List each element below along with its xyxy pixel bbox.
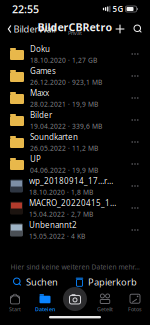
staticText: Dateien [35, 306, 55, 313]
staticText: 15.05.2022 · 4 KB [29, 232, 85, 240]
button[interactable]: Suchen [129, 20, 147, 38]
button[interactable]: Soundkarten [0, 131, 150, 153]
button[interactable]: Unbenannt2 [0, 219, 150, 241]
staticText: 26.05.2022 · 11,2 MB [30, 144, 98, 152]
staticText: MACRO_20220415_125125 [29, 197, 116, 208]
staticText: Bilder [30, 109, 52, 120]
button[interactable]: Games [0, 65, 150, 87]
staticText: 28.02.2021 · 19,9 MB [30, 100, 98, 108]
staticText: 15.04.2022 · 2,7 MB [29, 210, 93, 218]
staticText: Suchen [26, 276, 58, 288]
staticText: Games [30, 65, 56, 76]
button[interactable]: Hinzufügen [111, 20, 129, 38]
staticText: Hier sind keine weiteren Dateien mehr… [10, 263, 139, 271]
staticText: 04.06.2022 · 19,9 MB [30, 166, 98, 174]
button[interactable]: Bilder [0, 109, 150, 131]
button[interactable]: wp_20180914_17…rc-1-1-jpg.914888 [0, 175, 150, 197]
staticText: Maxx [30, 87, 49, 98]
staticText: Geteilt [97, 306, 113, 313]
staticText: wp_20180914_17…rc-1-1-jpg.914888 [29, 175, 116, 186]
staticText: 19.04.2022 · 339,6 MB [30, 122, 102, 130]
staticText: Doku [30, 43, 50, 54]
staticText: 18.10.2020 · 1,27 GB [30, 56, 97, 64]
staticText: 18.10.2020 · 1,8 MB [29, 188, 93, 196]
button[interactable]: Kamera [63, 287, 87, 311]
button[interactable]: Start [0, 291, 30, 315]
button[interactable]: UP [0, 153, 150, 175]
staticText: Start [9, 306, 21, 313]
button[interactable]: Geteilt [90, 291, 120, 315]
staticText: UP [30, 153, 41, 164]
staticText: Fotos [128, 306, 142, 313]
button[interactable]: Doku [0, 43, 150, 65]
staticText: 5G [112, 4, 123, 14]
staticText: 26.12.2020 · 923,1 MB [30, 78, 102, 86]
staticText: Papierkorb [88, 276, 137, 288]
button[interactable]: Maxx [0, 87, 150, 109]
button[interactable]: Papierkorb [71, 273, 141, 291]
staticText: BilderWall [13, 23, 55, 35]
staticText: 22:55 [12, 2, 39, 16]
button[interactable]: BilderWall [3, 19, 59, 39]
staticText: Privat [68, 29, 82, 37]
button[interactable]: MACRO_20220415_125125 [0, 197, 150, 219]
button[interactable]: Suchen [9, 273, 62, 291]
button[interactable]: Dateien [30, 291, 60, 315]
staticText: BilderCBRetro [37, 20, 112, 34]
button[interactable]: Fotos [120, 291, 150, 315]
staticText: Soundkarten [30, 131, 78, 142]
staticText: Unbenannt2 [29, 219, 77, 230]
